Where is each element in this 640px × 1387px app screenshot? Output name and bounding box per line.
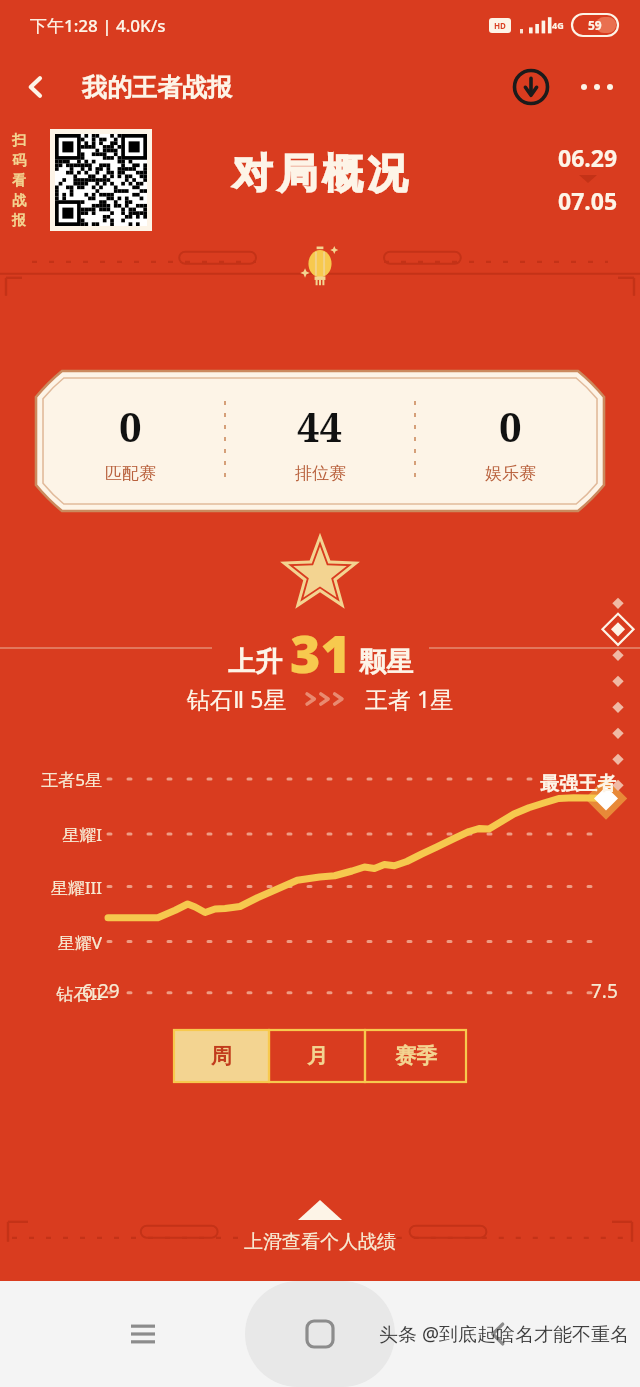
staticText: 星耀III — [16, 876, 102, 899]
staticText: 星耀I — [16, 823, 102, 846]
staticText: 6.29 — [82, 978, 120, 1004]
button[interactable]: 上滑查看个人战绩 — [244, 1200, 396, 1254]
staticText: 31 — [290, 617, 351, 679]
staticText: 0 — [119, 399, 142, 453]
staticText: 匹配赛 — [105, 463, 156, 484]
staticText: 下午1:28 | 4.0K/s — [30, 14, 166, 37]
staticText: 报 — [12, 212, 26, 230]
staticText: 看 — [12, 172, 26, 190]
staticText: 娱乐赛 — [485, 463, 536, 484]
staticText: 王者5星 — [16, 768, 102, 791]
staticText: 颗星 — [359, 645, 413, 679]
staticText: 对局概况 — [230, 148, 410, 198]
button[interactable]: 月 — [269, 1030, 365, 1082]
staticText: 上升 — [228, 645, 282, 679]
staticText: 王者 1星 — [365, 683, 454, 714]
staticText: 星耀V — [16, 931, 102, 954]
staticText: 06.29 — [558, 142, 618, 173]
staticText: 4G — [552, 19, 564, 31]
staticText: 战 — [12, 192, 26, 210]
staticText: 07.05 — [558, 185, 618, 216]
button[interactable]: Home — [285, 1299, 355, 1369]
staticText: 排位赛 — [295, 463, 346, 484]
staticText: 最强王者 — [540, 772, 616, 796]
button[interactable]: Recents — [108, 1299, 178, 1369]
button[interactable]: 44 — [226, 371, 414, 511]
staticText: 扫 — [12, 132, 26, 150]
staticText: 月 — [307, 1043, 328, 1069]
staticText: HD — [494, 20, 506, 31]
button[interactable]: Download — [508, 64, 554, 110]
staticText: 赛季 — [395, 1043, 437, 1069]
staticText: 59 — [588, 17, 602, 33]
button[interactable]: Back — [14, 65, 58, 109]
staticText: 码 — [12, 152, 26, 170]
button[interactable]: 赛季 — [365, 1030, 466, 1082]
staticText: 我的王者战报 — [82, 72, 232, 103]
button[interactable]: 周 — [174, 1030, 269, 1082]
staticText: 钻石Ⅱ 5星 — [187, 683, 287, 714]
button[interactable]: 0 — [36, 371, 224, 511]
staticText: 上滑查看个人战绩 — [244, 1230, 396, 1254]
button[interactable]: Back — [463, 1299, 533, 1369]
staticText: 头条 @到底起啥名才能不重名 — [379, 1321, 630, 1347]
staticText: 0 — [499, 399, 522, 453]
button[interactable]: QR code — [55, 134, 147, 226]
staticText: 周 — [211, 1043, 232, 1069]
button[interactable]: More options — [574, 64, 620, 110]
staticText: 7.5 — [591, 978, 618, 1004]
staticText: 钻石II — [16, 982, 102, 1005]
button[interactable]: 0 — [416, 371, 604, 511]
staticText: 44 — [297, 399, 343, 453]
